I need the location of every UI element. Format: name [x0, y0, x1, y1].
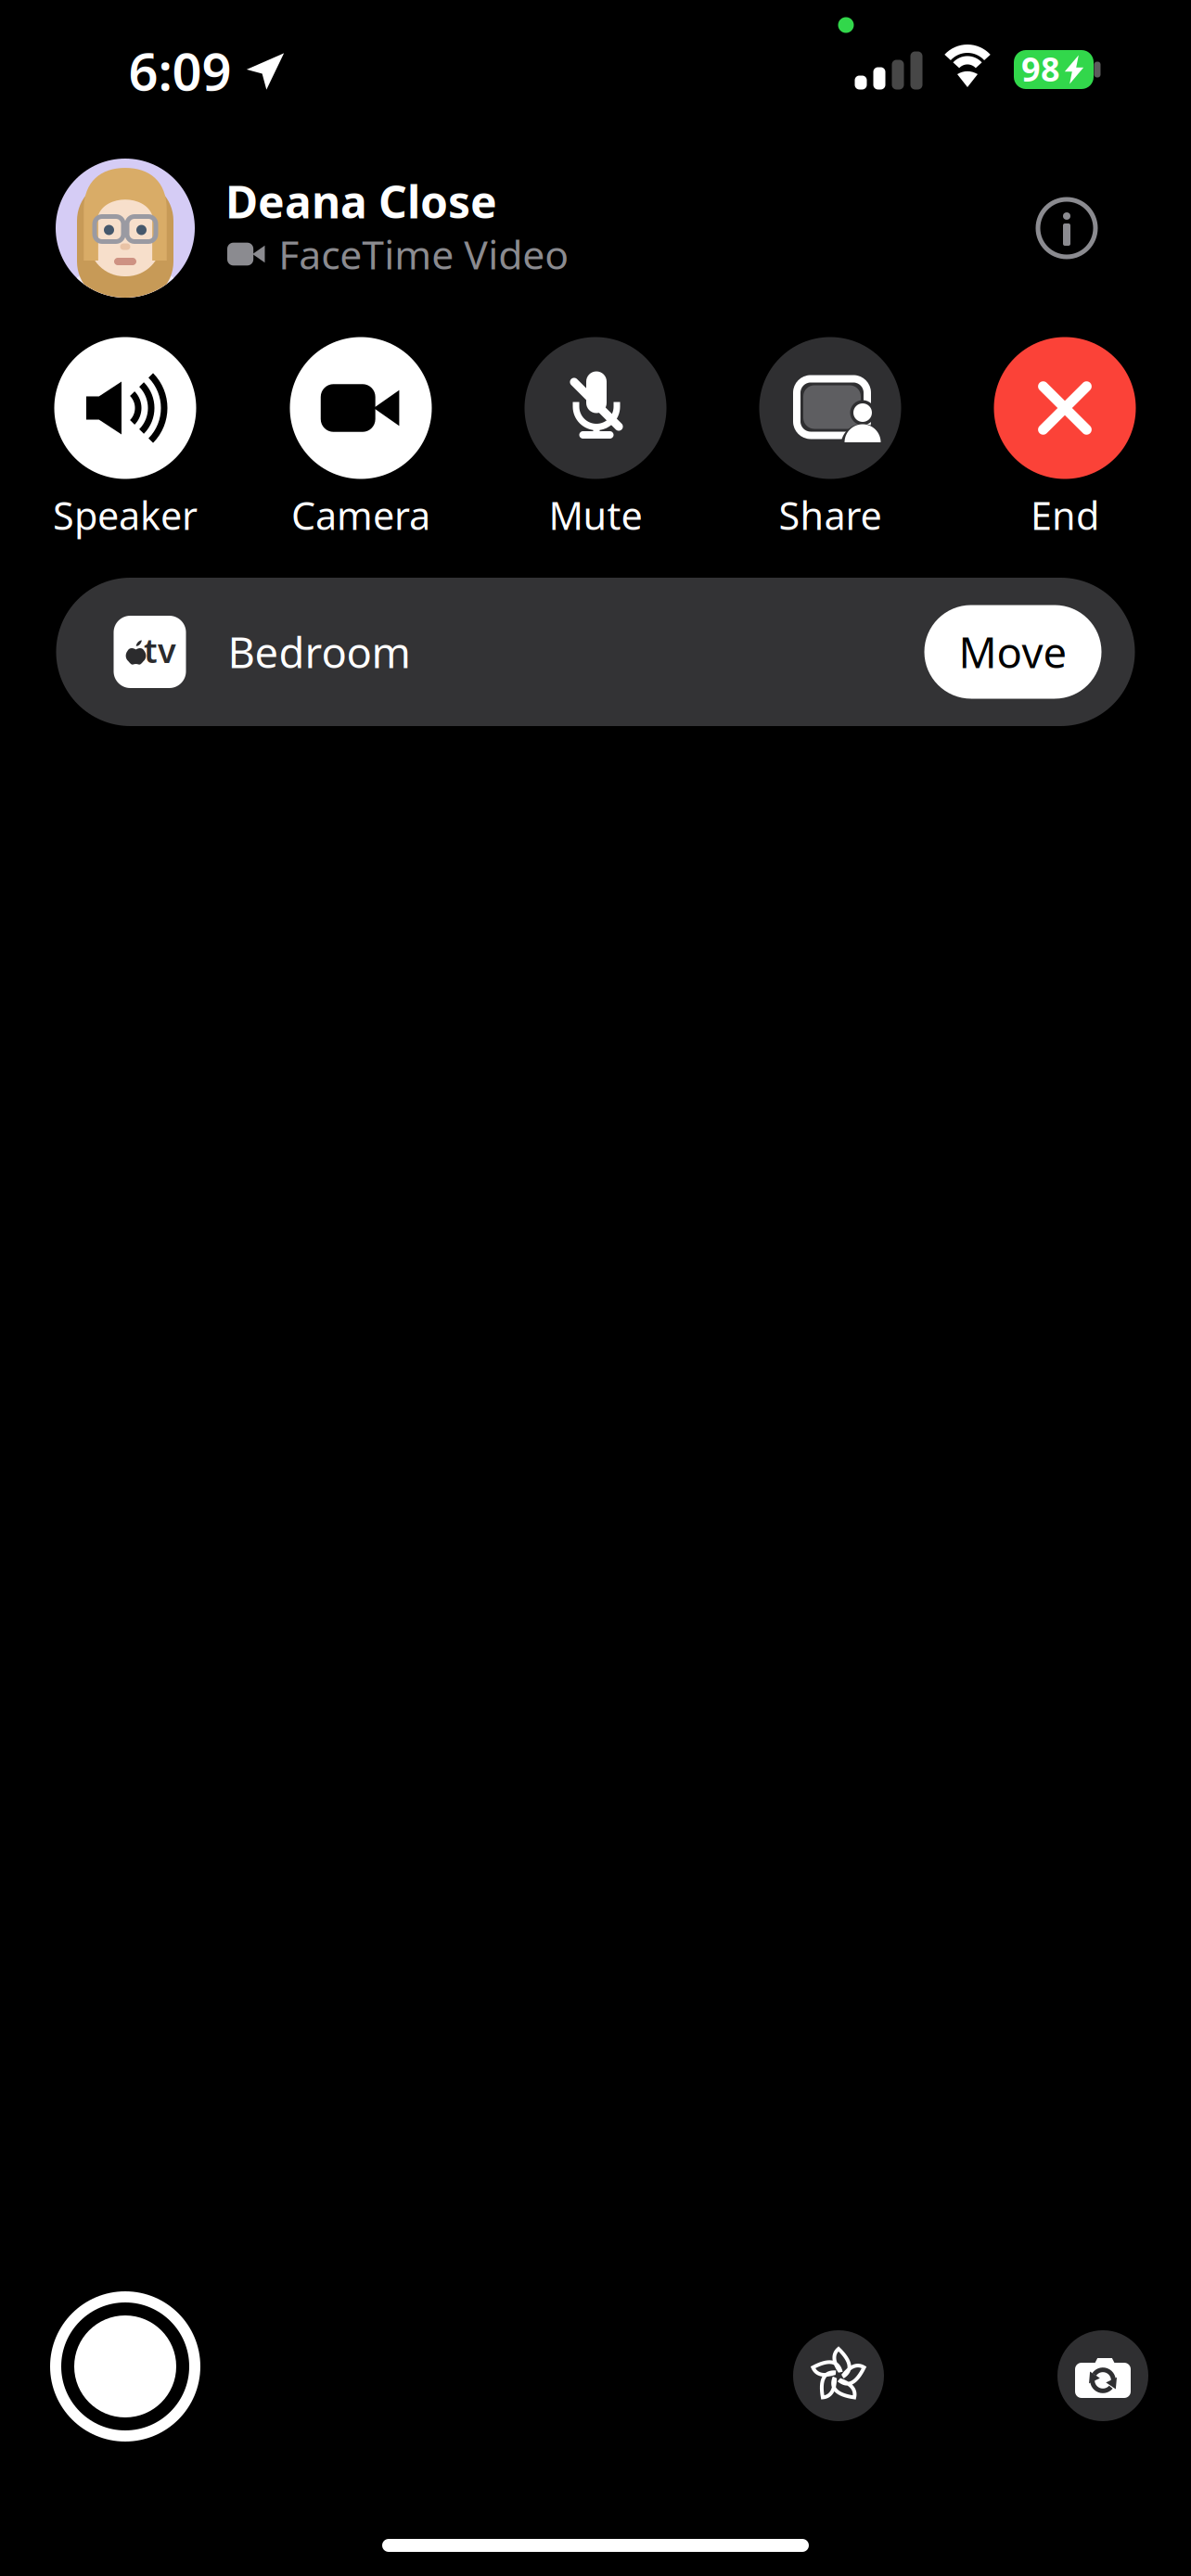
staticText: Share — [779, 490, 882, 541]
staticText: Speaker — [53, 490, 198, 541]
staticText: Move — [959, 624, 1067, 680]
staticText: Camera — [291, 490, 430, 541]
staticText: Bedroom — [228, 624, 410, 680]
staticText: 98 — [1021, 46, 1060, 91]
button[interactable]: Call details — [1033, 195, 1100, 261]
staticText: 6:09 — [128, 36, 231, 105]
staticText: End — [1031, 490, 1099, 541]
button[interactable]: Share — [719, 337, 941, 542]
button[interactable]: Camera — [250, 337, 472, 542]
button[interactable]: End — [954, 337, 1176, 542]
staticText: FaceTime Video — [279, 228, 569, 280]
button[interactable]: Flip Camera — [1057, 2330, 1148, 2421]
staticText: tv — [144, 628, 176, 672]
staticText: Deana Close — [225, 172, 497, 231]
button[interactable]: tv — [56, 578, 1135, 726]
button[interactable]: Speaker — [14, 337, 237, 542]
button[interactable]: Take Live Photo — [55, 2296, 196, 2437]
staticText: Mute — [549, 490, 642, 541]
button[interactable]: Effects — [793, 2330, 884, 2421]
button[interactable]: Mute — [484, 337, 707, 542]
